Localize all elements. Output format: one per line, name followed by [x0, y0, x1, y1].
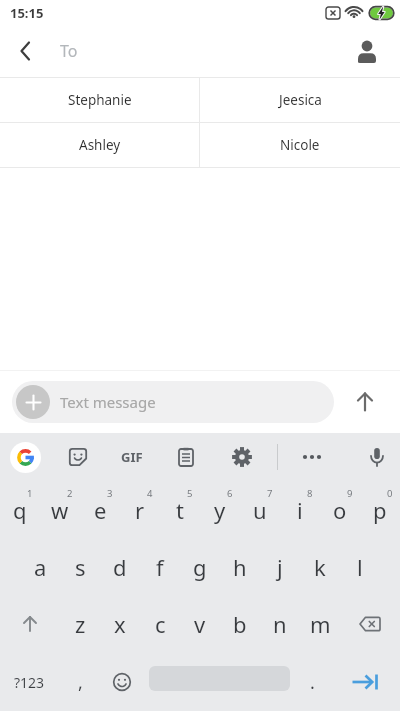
staticText: 15:15 [10, 4, 44, 22]
staticText: 7 [267, 487, 273, 500]
staticText: r [135, 495, 145, 525]
button[interactable] [0, 25, 52, 77]
staticText: Stephanie [68, 91, 132, 109]
staticText: d [113, 552, 127, 582]
staticText: u [253, 495, 267, 525]
button[interactable]: s [60, 538, 100, 595]
button[interactable]: d [100, 538, 140, 595]
staticText: 9 [347, 487, 353, 500]
staticText: n [273, 609, 287, 639]
staticText: w [51, 495, 69, 525]
button[interactable]: k [300, 538, 340, 595]
staticText: a [34, 552, 47, 582]
button[interactable]: h [220, 538, 260, 595]
button[interactable] [348, 25, 400, 77]
staticText: y [214, 495, 226, 525]
button[interactable]: GIF [106, 433, 158, 481]
button[interactable]: u [240, 481, 280, 538]
staticText: k [314, 552, 326, 582]
staticText: 5 [187, 487, 193, 500]
staticText: Text message [60, 392, 156, 412]
button[interactable] [284, 433, 340, 481]
button[interactable]: Stephanie [0, 78, 199, 122]
staticText: h [233, 552, 247, 582]
button[interactable]: m [300, 595, 340, 653]
button[interactable]: n [260, 595, 300, 653]
staticText: s [75, 552, 86, 582]
staticText: 8 [307, 487, 313, 500]
button[interactable]: l [340, 538, 380, 595]
button[interactable] [16, 385, 50, 419]
staticText: Jeesica [279, 91, 322, 109]
staticText: g [193, 552, 207, 582]
button[interactable]: c [140, 595, 180, 653]
button[interactable]: e [80, 481, 120, 538]
button[interactable] [158, 433, 214, 481]
staticText: Ashley [79, 136, 121, 154]
staticText: 3 [107, 487, 113, 500]
button[interactable]: Jeesica [200, 78, 400, 122]
staticText: 1 [27, 487, 33, 500]
button[interactable] [340, 595, 400, 653]
staticText: m [310, 609, 331, 639]
button[interactable]: x [100, 595, 140, 653]
staticText: GIF [121, 448, 143, 466]
button[interactable]: i [280, 481, 320, 538]
staticText: f [156, 552, 164, 582]
button[interactable]: a [20, 538, 60, 595]
staticText: Nicole [280, 136, 320, 154]
button[interactable]: w [40, 481, 80, 538]
staticText: v [194, 609, 206, 639]
button[interactable]: b [220, 595, 260, 653]
button[interactable]: y [200, 481, 240, 538]
button[interactable] [142, 653, 292, 711]
button[interactable]: ?123 [0, 653, 58, 711]
staticText: z [75, 609, 86, 639]
button[interactable]: q [0, 481, 40, 538]
staticText: t [176, 495, 184, 525]
staticText: i [297, 495, 303, 525]
button[interactable]: r [120, 481, 160, 538]
staticText: 4 [147, 487, 153, 500]
button[interactable]: j [260, 538, 300, 595]
button[interactable]: f [140, 538, 180, 595]
button[interactable] [354, 433, 400, 481]
button[interactable]: p [360, 481, 400, 538]
button[interactable]: , [58, 653, 102, 711]
button[interactable] [214, 433, 270, 481]
staticText: ?123 [14, 673, 45, 692]
button[interactable] [332, 653, 400, 711]
button[interactable]: o [320, 481, 360, 538]
staticText: To [60, 40, 78, 62]
button[interactable] [0, 595, 60, 653]
staticText: 0 [387, 487, 393, 500]
button[interactable] [102, 653, 142, 711]
button[interactable]: Ashley [0, 123, 199, 167]
button[interactable]: . [292, 653, 332, 711]
button[interactable]: Text message [12, 381, 334, 423]
staticText: c [155, 609, 166, 639]
staticText: 6 [227, 487, 233, 500]
staticText: j [277, 552, 283, 582]
staticText: x [114, 609, 126, 639]
staticText: q [13, 495, 27, 525]
button[interactable]: t [160, 481, 200, 538]
staticText: , [78, 670, 83, 695]
button[interactable]: g [180, 538, 220, 595]
staticText: b [233, 609, 247, 639]
staticText: p [373, 495, 387, 525]
button[interactable]: v [180, 595, 220, 653]
button[interactable] [334, 371, 400, 433]
button[interactable]: Nicole [200, 123, 400, 167]
button[interactable] [50, 433, 106, 481]
staticText: 2 [67, 487, 73, 500]
staticText: . [310, 670, 315, 695]
staticText: e [94, 495, 107, 525]
staticText: o [333, 495, 347, 525]
staticText: l [357, 552, 363, 582]
button[interactable]: z [60, 595, 100, 653]
button[interactable] [0, 433, 50, 481]
